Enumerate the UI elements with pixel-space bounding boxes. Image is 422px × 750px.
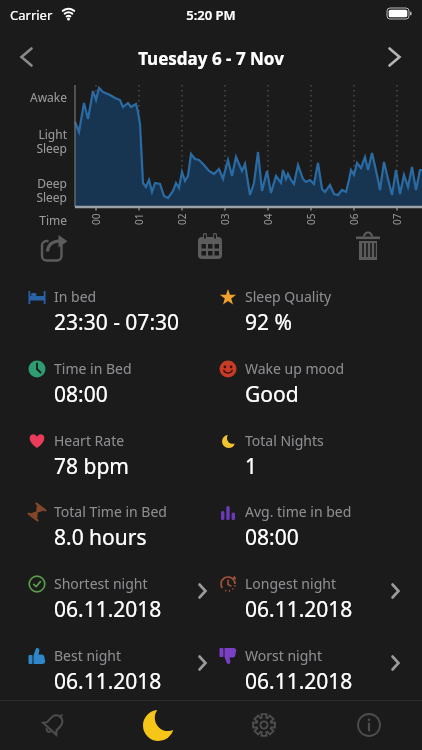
staticText: 05 (304, 213, 318, 225)
staticText: 03 (218, 213, 232, 225)
staticText: Longest night (245, 574, 336, 593)
staticText: 06.11.2018 (54, 595, 162, 624)
staticText: Light (0, 126, 67, 142)
staticText: 8.0 hours (54, 523, 147, 552)
staticText: 06.11.2018 (245, 595, 353, 624)
staticText: Total Nights (245, 431, 324, 450)
button[interactable] (23, 700, 83, 750)
button[interactable]: Wake up mood (219, 359, 345, 409)
button[interactable] (355, 232, 381, 262)
staticText: 1 (245, 452, 258, 481)
staticText: Best night (54, 646, 121, 665)
staticText: 08:00 (54, 380, 108, 409)
staticText: 04 (261, 213, 275, 225)
staticText: 01 (132, 213, 146, 225)
button[interactable] (339, 700, 399, 750)
button[interactable]: Total Nights (219, 431, 324, 481)
staticText: Tuesday 6 - 7 Nov (0, 47, 422, 70)
staticText: 92 % (245, 308, 292, 337)
button[interactable]: Shortest night (28, 574, 162, 624)
button[interactable] (128, 700, 188, 750)
staticText: 5:20 PM (0, 6, 422, 24)
button[interactable]: In bed (28, 287, 180, 337)
button[interactable] (197, 233, 225, 261)
staticText: Sleep (0, 140, 67, 156)
staticText: Deep (0, 175, 67, 191)
staticText: 23:30 - 07:30 (54, 308, 180, 337)
staticText: 78 bpm (54, 452, 129, 481)
staticText: Time (0, 212, 67, 228)
staticText: 07 (390, 213, 404, 225)
staticText: Good (245, 380, 299, 409)
staticText: 06 (347, 213, 361, 225)
button[interactable]: Total Time in Bed (28, 502, 167, 552)
button[interactable]: Heart Rate (28, 431, 129, 481)
button[interactable]: Best night (28, 646, 162, 696)
button[interactable]: Avg. time in bed (219, 502, 352, 552)
button[interactable]: Sleep Quality (219, 287, 332, 337)
staticText: Awake (0, 89, 67, 105)
button[interactable] (388, 47, 401, 67)
staticText: Wake up mood (245, 359, 345, 378)
staticText: 06.11.2018 (54, 667, 162, 696)
staticText: 08:00 (245, 523, 299, 552)
button[interactable]: Worst night (219, 646, 353, 696)
button[interactable] (234, 700, 294, 750)
button[interactable] (41, 233, 70, 261)
staticText: Time in Bed (54, 359, 132, 378)
staticText: 02 (175, 213, 189, 225)
staticText: In bed (54, 287, 97, 306)
staticText: Shortest night (54, 574, 148, 593)
staticText: Avg. time in bed (245, 502, 352, 521)
button[interactable]: Time in Bed (28, 359, 132, 409)
staticText: 06.11.2018 (245, 667, 353, 696)
staticText: Sleep Quality (245, 287, 332, 306)
button[interactable]: Longest night (219, 574, 353, 624)
staticText: 00 (89, 213, 103, 225)
staticText: Carrier (10, 6, 53, 24)
button[interactable] (20, 47, 33, 67)
staticText: Total Time in Bed (54, 502, 167, 521)
staticText: Heart Rate (54, 431, 125, 450)
staticText: Worst night (245, 646, 322, 665)
staticText: Sleep (0, 189, 67, 205)
